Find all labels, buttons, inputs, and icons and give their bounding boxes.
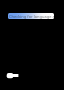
- button[interactable]: Logo: [5, 71, 21, 80]
- button[interactable]: Checking for language and system updates: [8, 13, 54, 19]
- staticText: Checking for language and system updates: [9, 14, 54, 19]
